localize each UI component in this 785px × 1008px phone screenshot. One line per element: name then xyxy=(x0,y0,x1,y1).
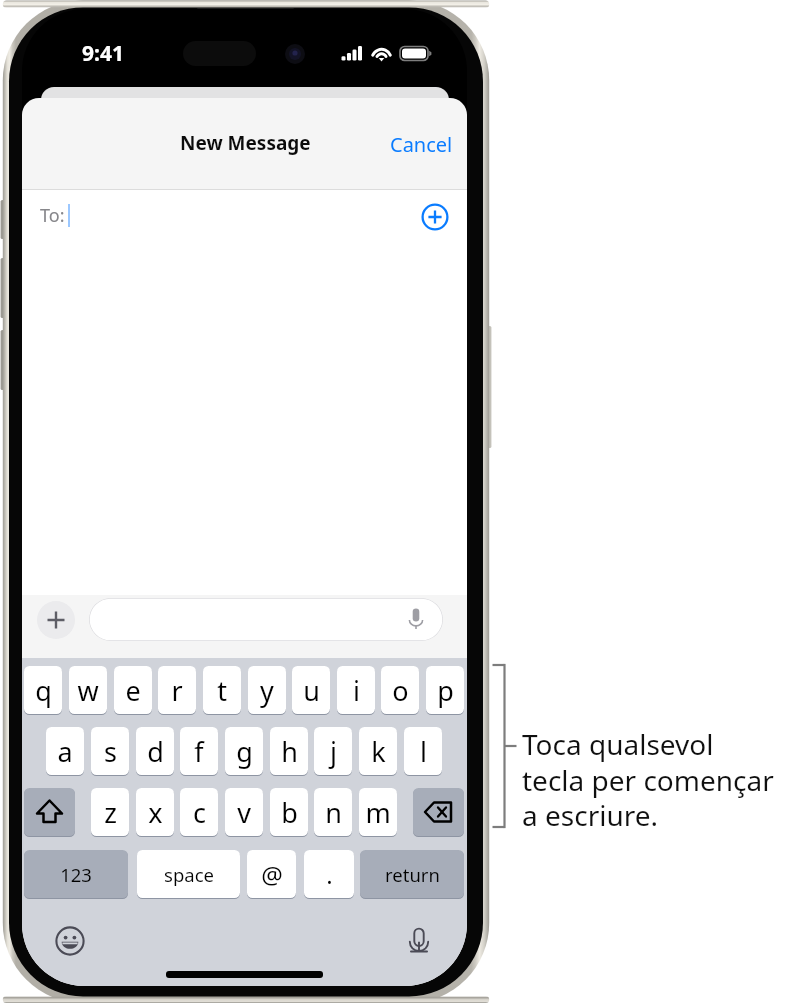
button[interactable]: y xyxy=(248,666,286,714)
staticText: space xyxy=(164,862,214,887)
button[interactable]: z xyxy=(91,788,129,836)
staticText: e xyxy=(125,672,141,709)
staticText: u xyxy=(303,672,320,709)
button[interactable]: v xyxy=(225,788,263,836)
staticText: v xyxy=(237,794,251,831)
staticText: i xyxy=(353,672,360,709)
button[interactable]: h xyxy=(270,727,308,775)
button[interactable]: p xyxy=(426,666,464,714)
staticText: q xyxy=(35,672,52,709)
staticText: t xyxy=(217,672,227,709)
button[interactable]: Delete xyxy=(413,788,464,836)
staticText: l xyxy=(420,733,427,770)
button[interactable]: j xyxy=(314,727,352,775)
staticText: g xyxy=(236,733,253,770)
button[interactable]: Cancel xyxy=(377,120,466,168)
staticText: p xyxy=(437,672,454,709)
staticText: j xyxy=(330,733,337,770)
button[interactable]: t xyxy=(203,666,241,714)
button[interactable] xyxy=(89,598,443,641)
button[interactable]: k xyxy=(359,727,397,775)
staticText: h xyxy=(281,733,298,770)
staticText: Cancel xyxy=(390,131,453,158)
staticText: o xyxy=(392,672,409,709)
button[interactable]: i xyxy=(337,666,375,714)
staticText: To: xyxy=(40,203,65,228)
button[interactable]: l xyxy=(404,727,442,775)
staticText: r xyxy=(171,672,183,709)
button[interactable]: return xyxy=(360,850,464,898)
button[interactable]: Emoji keyboard xyxy=(52,923,87,958)
staticText: New Message xyxy=(180,130,311,156)
staticText: y xyxy=(260,672,274,709)
staticText: s xyxy=(104,733,117,770)
staticText: 123 xyxy=(60,862,92,887)
button[interactable]: n xyxy=(314,788,352,836)
button[interactable]: space xyxy=(137,850,240,898)
staticText: return xyxy=(385,862,440,887)
staticText: @ xyxy=(261,858,283,891)
staticText: n xyxy=(325,794,342,831)
button[interactable]: Add contact xyxy=(416,198,453,235)
button[interactable]: o xyxy=(381,666,419,714)
staticText: k xyxy=(371,733,386,770)
button[interactable]: . xyxy=(304,850,354,898)
staticText: d xyxy=(147,733,164,770)
button[interactable]: Add attachment xyxy=(37,601,75,639)
staticText: x xyxy=(148,794,163,831)
staticText: a xyxy=(57,733,73,770)
button[interactable]: g xyxy=(225,727,263,775)
staticText: z xyxy=(104,794,117,831)
button[interactable]: a xyxy=(46,727,84,775)
staticText: Toca qualsevol tecla per començar a escr… xyxy=(522,725,774,834)
staticText: f xyxy=(194,733,204,770)
staticText: b xyxy=(281,794,298,831)
button[interactable]: 123 xyxy=(24,850,128,898)
button[interactable]: m xyxy=(359,788,397,836)
button[interactable]: x xyxy=(136,788,174,836)
button[interactable]: e xyxy=(114,666,152,714)
button[interactable]: r xyxy=(158,666,196,714)
staticText: w xyxy=(77,672,99,709)
staticText: . xyxy=(326,858,333,891)
staticText: m xyxy=(365,794,391,831)
button[interactable]: w xyxy=(69,666,107,714)
button[interactable]: q xyxy=(24,666,62,714)
button[interactable]: f xyxy=(180,727,218,775)
button[interactable]: s xyxy=(91,727,129,775)
staticText: 9:41 xyxy=(82,39,124,68)
button[interactable]: b xyxy=(270,788,308,836)
button[interactable]: u xyxy=(292,666,330,714)
button[interactable]: Shift xyxy=(24,788,75,836)
staticText: c xyxy=(193,794,206,831)
button[interactable]: @ xyxy=(247,850,296,898)
button[interactable]: Dictation xyxy=(401,923,436,958)
button[interactable]: d xyxy=(136,727,174,775)
button[interactable]: c xyxy=(180,788,218,836)
